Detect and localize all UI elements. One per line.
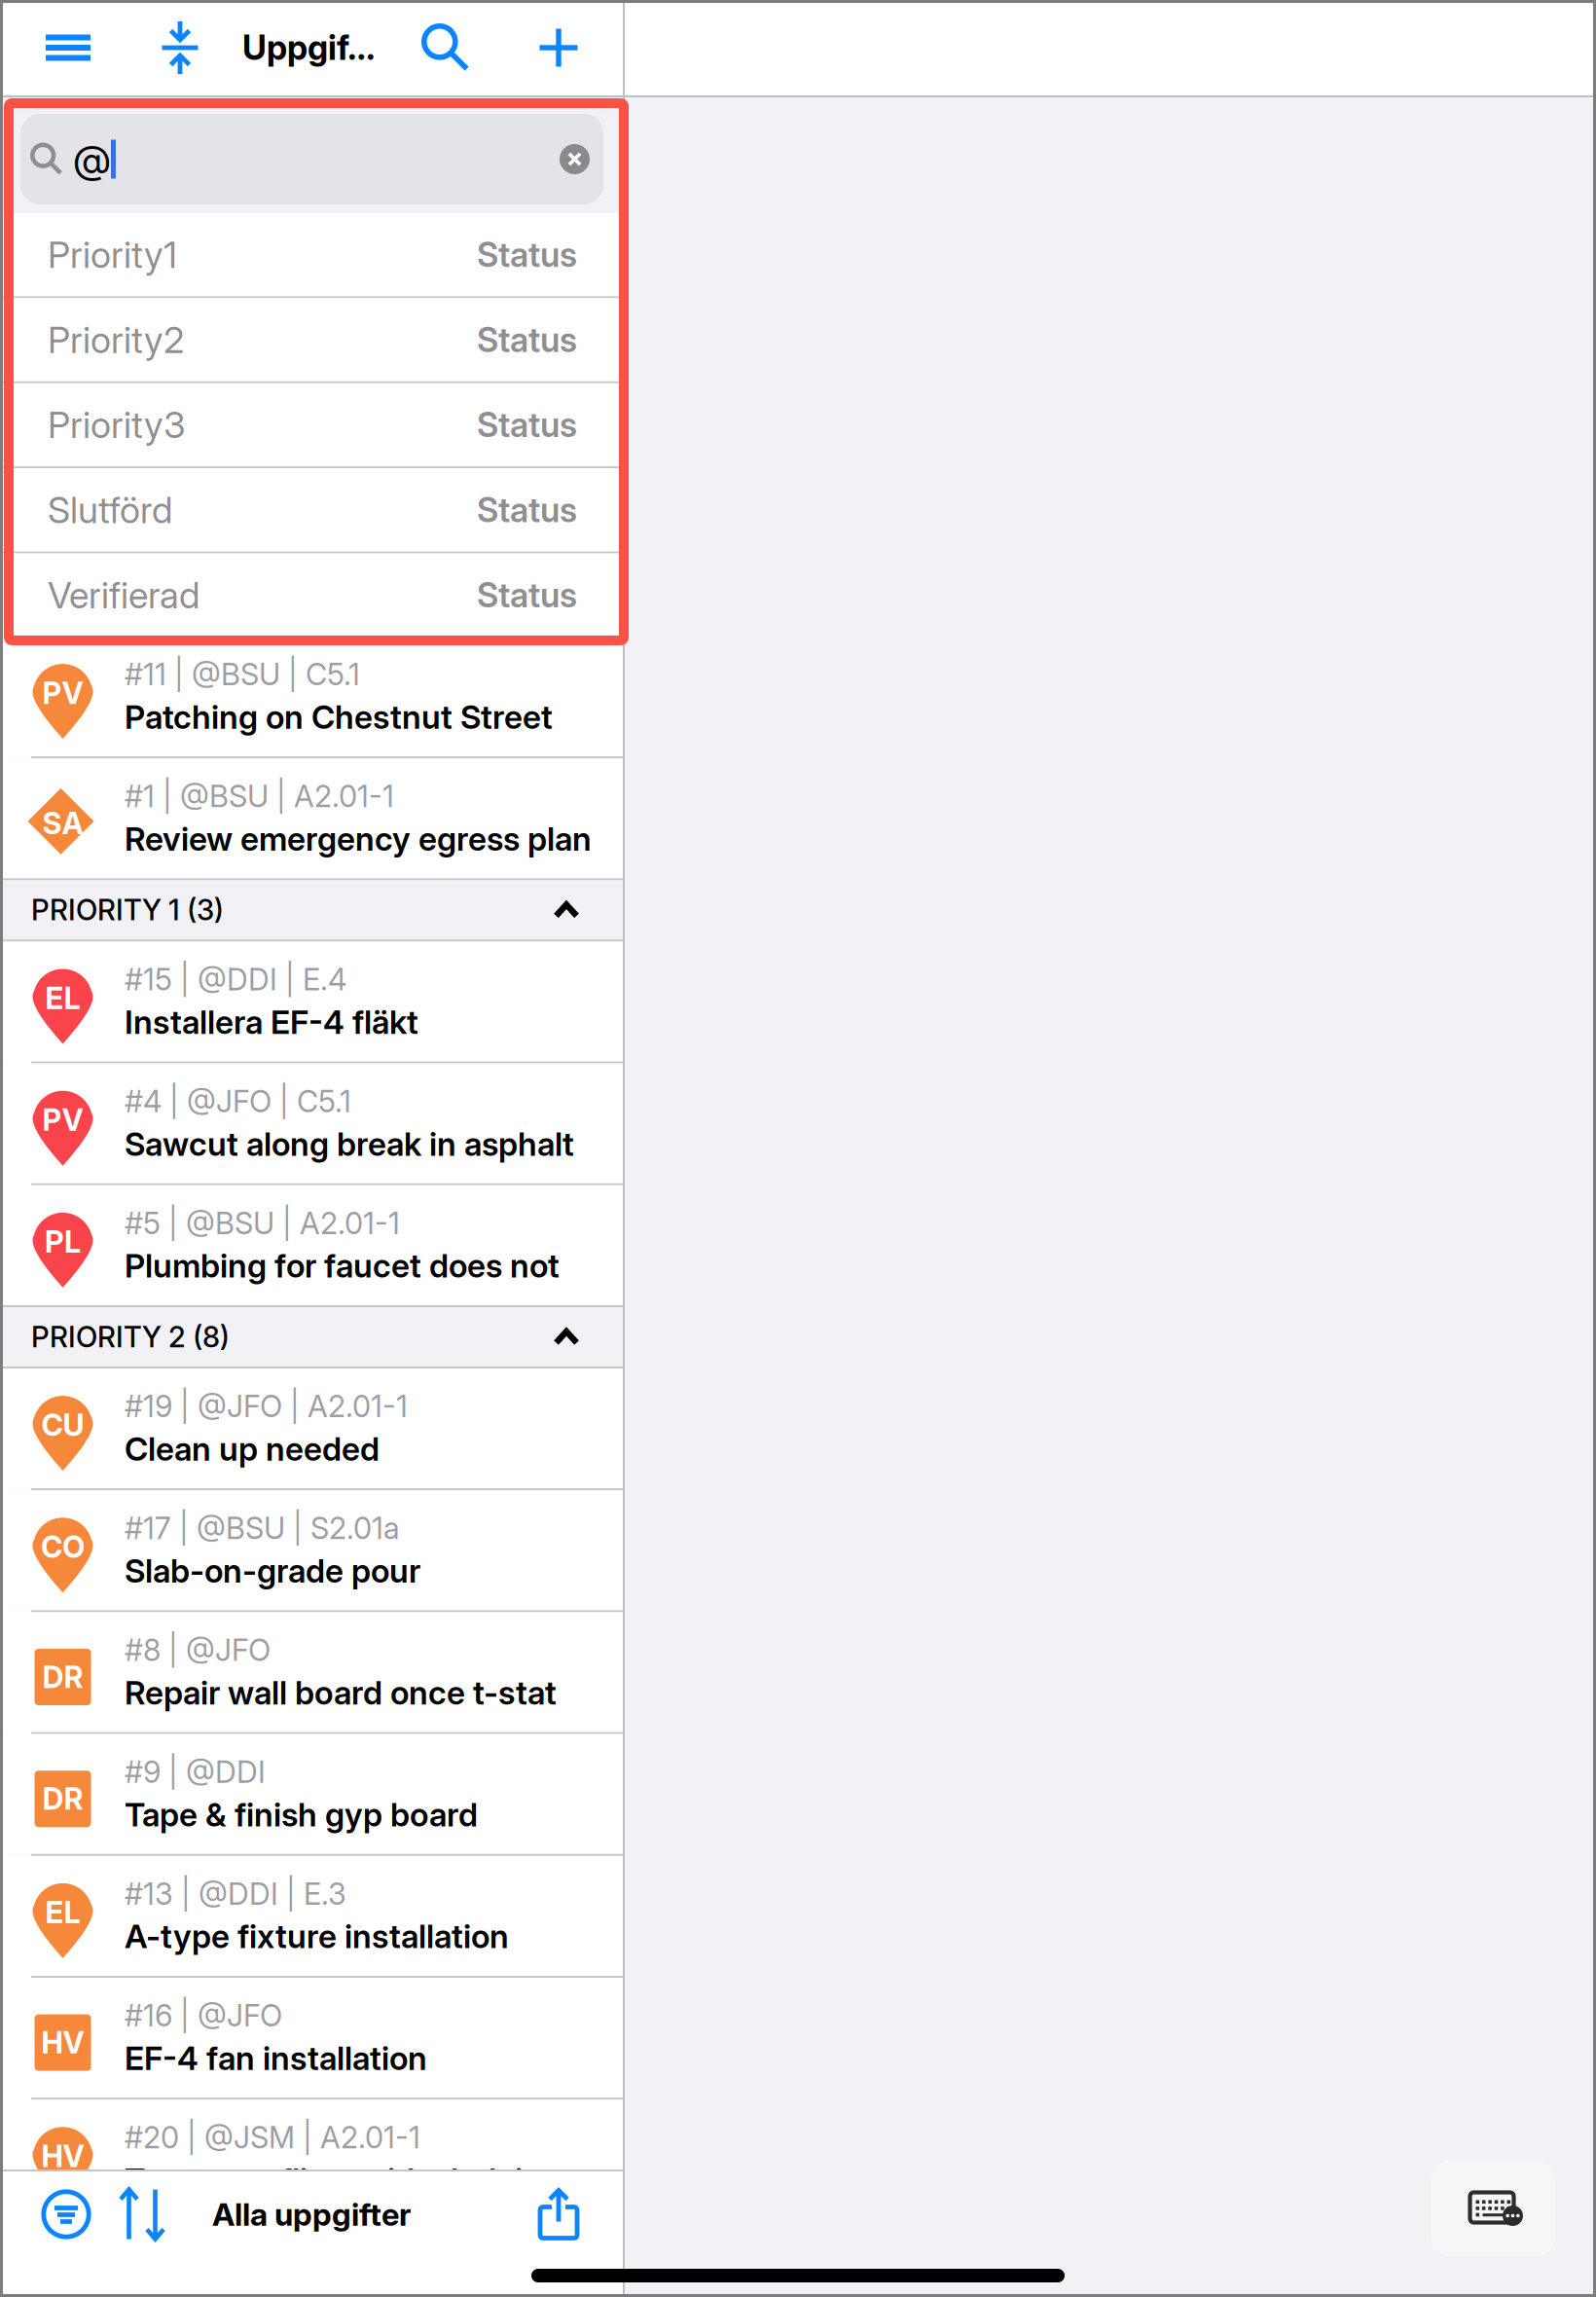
staticText: Repair wall board once t-stat bbox=[125, 1673, 557, 1712]
staticText: Tape & finish gyp board bbox=[125, 1795, 478, 1834]
staticText: Status bbox=[477, 575, 577, 615]
staticText: EL bbox=[45, 980, 80, 1016]
button[interactable]: Collapse all bbox=[137, 0, 223, 95]
staticText: Status bbox=[477, 234, 577, 275]
staticText: EL bbox=[45, 1894, 80, 1930]
button[interactable]: Slutförd bbox=[0, 468, 624, 551]
staticText: @ bbox=[73, 136, 111, 183]
staticText: Alla uppgifter bbox=[212, 2195, 411, 2233]
button[interactable]: Priority2 bbox=[0, 298, 624, 381]
staticText: Plumbing for faucet does not bbox=[125, 1246, 560, 1285]
staticText: Review emergency egress plan bbox=[125, 819, 592, 858]
button[interactable]: PL bbox=[0, 1185, 624, 1305]
staticText: Priority2 bbox=[48, 318, 184, 362]
button[interactable]: Priority3 bbox=[0, 383, 624, 466]
button[interactable]: PV bbox=[0, 637, 624, 756]
button[interactable]: HV bbox=[0, 1978, 624, 2098]
staticText: #1 | @BSU | A2.01-1 bbox=[125, 778, 394, 814]
button[interactable]: SA bbox=[0, 758, 624, 878]
staticText: Slab-on-grade pour bbox=[125, 1551, 420, 1590]
staticText: EF-4 fan installation bbox=[125, 2039, 427, 2078]
staticText: #16 | @JFO bbox=[125, 1998, 282, 2034]
staticText: #9 | @DDI bbox=[125, 1754, 266, 1790]
button[interactable]: Share bbox=[518, 2169, 599, 2259]
staticText: Status bbox=[477, 489, 577, 530]
staticText: #8 | @JFO bbox=[125, 1632, 271, 1668]
button[interactable]: PRIORITY 2 (8) bbox=[0, 1307, 624, 1367]
staticText: Installera EF-4 fläkt bbox=[125, 1002, 418, 1042]
staticText: PRIORITY 2 (8) bbox=[31, 1320, 230, 1354]
button[interactable]: Search bbox=[403, 0, 489, 95]
staticText: #20 | @JSM | A2.01-1 bbox=[125, 2119, 420, 2156]
button[interactable]: Add task bbox=[516, 0, 601, 95]
button[interactable]: PV bbox=[0, 1063, 624, 1183]
staticText: Patching on Chestnut Street bbox=[125, 697, 553, 737]
button[interactable]: Sort bbox=[101, 2169, 183, 2259]
staticText: HV bbox=[41, 2138, 84, 2174]
staticText: #11 | @BSU | C5.1 bbox=[125, 656, 360, 693]
staticText: DR bbox=[42, 1781, 83, 1817]
staticText: PRIORITY 1 (3) bbox=[31, 893, 224, 927]
button[interactable]: EL bbox=[0, 1856, 624, 1976]
staticText: Uppgif… bbox=[242, 27, 376, 68]
staticText: PL bbox=[45, 1224, 81, 1260]
button[interactable]: Verifierad bbox=[0, 553, 624, 637]
button[interactable]: DR bbox=[0, 1612, 624, 1732]
button[interactable]: DR bbox=[0, 1734, 624, 1854]
staticText: Sawcut along break in asphalt bbox=[125, 1124, 574, 1163]
staticText: A-type fixture installation bbox=[125, 1917, 509, 1956]
staticText: Clean up needed bbox=[125, 1429, 380, 1469]
staticText: #15 | @DDI | E.4 bbox=[125, 961, 346, 998]
button[interactable]: HV bbox=[0, 2100, 624, 2220]
staticText: PV bbox=[42, 675, 83, 711]
staticText: HV bbox=[41, 2024, 84, 2061]
button[interactable]: Priority1 bbox=[0, 213, 624, 296]
staticText: #5 | @BSU | A2.01-1 bbox=[125, 1205, 400, 1241]
staticText: #19 | @JFO | A2.01-1 bbox=[125, 1388, 408, 1424]
button[interactable]: EL bbox=[0, 942, 624, 1061]
button[interactable]: Keyboard options bbox=[1431, 2161, 1555, 2256]
button[interactable]: Menu bbox=[25, 0, 111, 95]
staticText: DR bbox=[42, 1659, 83, 1695]
staticText: #17 | @BSU | S2.01a bbox=[125, 1510, 400, 1546]
staticText: #13 | @DDI | E.3 bbox=[125, 1876, 346, 1912]
staticText: Verifierad bbox=[48, 573, 199, 617]
button[interactable]: CO bbox=[0, 1490, 624, 1610]
staticText: T-stat conflicts with shelving bbox=[125, 2160, 562, 2200]
staticText: Priority3 bbox=[48, 403, 186, 447]
button[interactable]: Filter bbox=[25, 2169, 107, 2259]
button[interactable]: CU bbox=[0, 1368, 624, 1488]
staticText: PV bbox=[42, 1102, 83, 1138]
staticText: Priority1 bbox=[48, 233, 177, 277]
button[interactable]: Clear search bbox=[560, 144, 590, 174]
staticText: CU bbox=[41, 1407, 84, 1443]
staticText: #4 | @JFO | C5.1 bbox=[125, 1083, 351, 1119]
button[interactable]: PRIORITY 1 (3) bbox=[0, 880, 624, 940]
staticText: CO bbox=[41, 1529, 85, 1565]
staticText: SA bbox=[42, 805, 83, 841]
staticText: Status bbox=[477, 319, 577, 360]
staticText: Slutförd bbox=[48, 488, 172, 532]
staticText: Status bbox=[477, 404, 577, 445]
